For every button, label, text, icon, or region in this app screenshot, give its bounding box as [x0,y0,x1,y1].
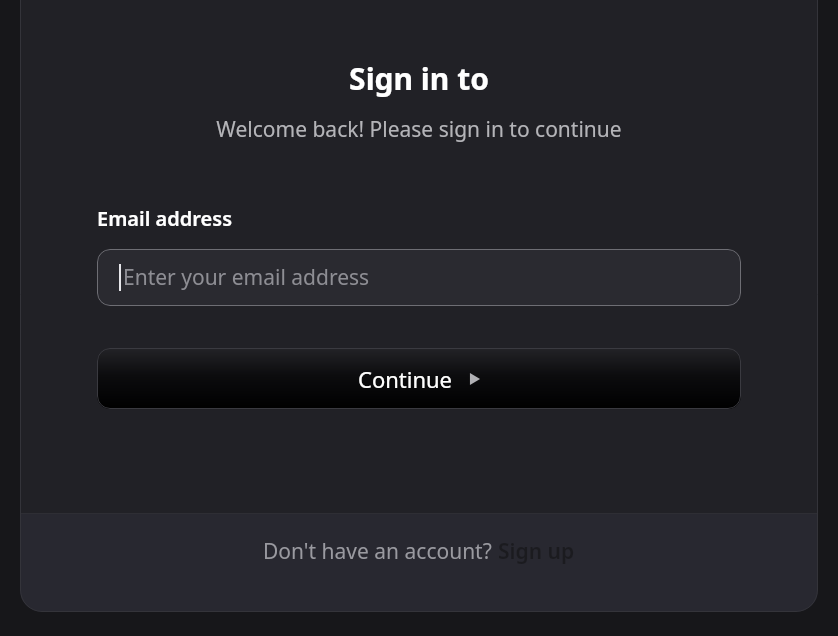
staticText: Enter your email address [123,263,370,292]
staticText: Welcome back! Please sign in to continue [216,115,622,144]
staticText: Don't have an account? [263,537,498,566]
staticText: Sign up [498,537,575,566]
button[interactable]: Continue [97,348,741,409]
staticText: Email address [97,205,233,232]
staticText: Sign in to [349,58,489,99]
button[interactable]: Email address input [97,249,741,306]
button[interactable]: Don't have an account? [263,537,575,566]
staticText: Continue [358,364,453,394]
